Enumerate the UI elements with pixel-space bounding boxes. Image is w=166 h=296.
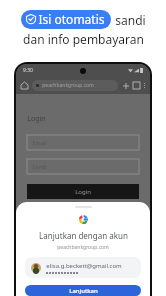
- button[interactable]: peachbankgroup.com: [32, 80, 118, 91]
- staticText: Isi otomatis: [38, 11, 105, 27]
- staticText: Lanjutkan: [69, 287, 98, 295]
- staticText: Sandi: [32, 163, 47, 170]
- button[interactable]: Tabs: [133, 82, 140, 89]
- staticText: dan info pembayaran: [23, 31, 144, 47]
- button[interactable]: Isi otomatis: [21, 10, 111, 29]
- staticText: Login: [27, 114, 46, 124]
- button[interactable]: Add: [123, 83, 129, 89]
- button[interactable]: More options: [144, 83, 145, 88]
- staticText: peachbankgroup.com: [57, 244, 109, 251]
- button[interactable]: Sandi: [27, 159, 139, 174]
- button[interactable]: elisa.g.beckett@gmail.com: [25, 257, 141, 278]
- staticText: Email: [32, 139, 47, 146]
- button[interactable]: Email: [27, 135, 139, 150]
- staticText: Login: [75, 188, 91, 196]
- staticText: peachbankgroup.com: [42, 82, 94, 89]
- button[interactable]: Lanjutkan: [25, 285, 141, 296]
- button[interactable]: Home: [21, 82, 28, 89]
- staticText: Lanjutkan dengan akun: [39, 230, 128, 241]
- staticText: elisa.g.beckett@gmail.com: [46, 262, 122, 270]
- button[interactable]: Login: [27, 184, 139, 199]
- staticText: 9:30: [23, 67, 33, 74]
- staticText: sandi: [115, 12, 146, 28]
